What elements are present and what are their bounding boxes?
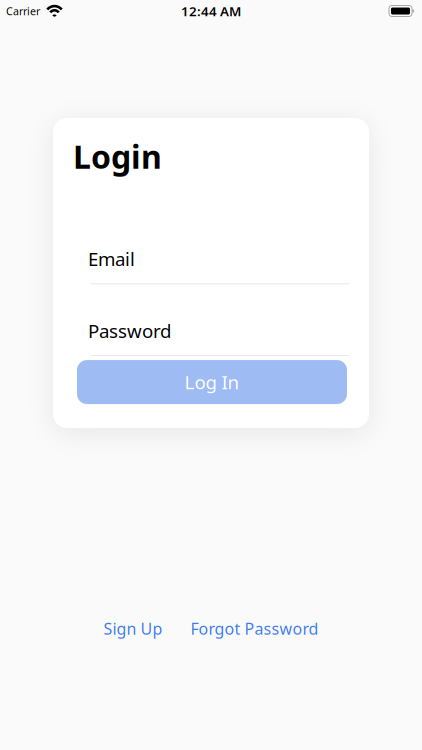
button[interactable]: Forgot Password (190, 618, 318, 639)
staticText: Email (88, 246, 135, 271)
staticText: Log In (184, 370, 239, 394)
staticText: Sign Up (103, 618, 162, 639)
button[interactable]: Log In (73, 360, 349, 404)
button[interactable]: Sign Up (103, 618, 162, 639)
staticText: Carrier (6, 4, 40, 18)
staticText: Login (73, 135, 162, 177)
staticText: 12:44 AM (181, 2, 241, 20)
staticText: Password (88, 318, 171, 343)
staticText: Forgot Password (190, 618, 318, 639)
